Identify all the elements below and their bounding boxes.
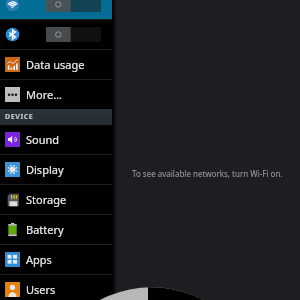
staticText: To see available networks, turn Wi-Fi on…	[132, 168, 283, 179]
staticText: More…	[26, 87, 62, 102]
button[interactable]: Storage	[0, 185, 112, 214]
button[interactable]: Battery	[0, 215, 112, 244]
button[interactable]: Sound	[0, 125, 112, 154]
staticText: Storage	[26, 192, 67, 207]
button[interactable]: Toggle	[0, 20, 112, 49]
button[interactable]: Toggle	[46, 27, 101, 42]
staticText: Sound	[26, 132, 60, 147]
button[interactable]: More…	[0, 80, 112, 109]
staticText: DEVICE	[5, 112, 34, 122]
button[interactable]: Toggle	[46, 0, 101, 12]
button[interactable]: Users	[0, 275, 112, 300]
staticText: Data usage	[26, 57, 85, 72]
staticText: Display	[26, 162, 64, 177]
button[interactable]: Apps	[0, 245, 112, 274]
staticText: Users	[26, 282, 56, 297]
button[interactable]: Toggle	[0, 0, 112, 19]
button[interactable]: Data usage	[0, 50, 112, 79]
staticText: Apps	[26, 252, 52, 267]
button[interactable]: Display	[0, 155, 112, 184]
staticText: Battery	[26, 222, 64, 237]
